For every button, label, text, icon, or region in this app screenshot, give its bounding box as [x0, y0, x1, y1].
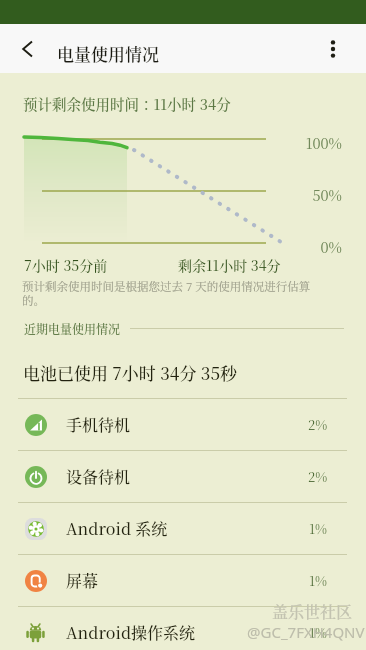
staticText: 手机待机 — [66, 413, 131, 436]
staticText: 预计剩余使用时间：11小时 34分 — [23, 93, 231, 114]
staticText: 1% — [309, 623, 328, 642]
staticText: 100% — [282, 132, 342, 153]
staticText: 屏幕 — [66, 569, 99, 592]
staticText: 近期电量使用情况 — [24, 320, 121, 337]
button[interactable]: 设备待机 — [0, 451, 366, 502]
staticText: 2% — [308, 467, 328, 486]
staticText: 0% — [282, 236, 342, 257]
button[interactable]: Android 系统 — [0, 503, 366, 554]
staticText: 设备待机 — [66, 465, 131, 488]
staticText: @GC_7FXH4QNV — [247, 622, 365, 642]
staticText: 2% — [308, 415, 328, 434]
staticText: 电量使用情况 — [57, 41, 159, 65]
button[interactable]: 手机待机 — [0, 399, 366, 450]
staticText: 1% — [309, 571, 328, 590]
staticText: Android操作系统 — [66, 621, 196, 644]
button[interactable]: More options — [309, 25, 357, 73]
staticText: 预计剩余使用时间是根据您过去 7 天的使用情况进行估算的。 — [22, 278, 321, 308]
staticText: 7小时 35分前 — [24, 255, 108, 275]
button[interactable]: Android操作系统 — [0, 607, 366, 650]
staticText: 电池已使用 7小时 34分 35秒 — [23, 360, 238, 384]
staticText: 1% — [309, 519, 328, 538]
staticText: 50% — [282, 184, 342, 205]
staticText: Android 系统 — [66, 517, 168, 540]
button[interactable]: 屏幕 — [0, 555, 366, 606]
button[interactable]: Back — [4, 25, 52, 73]
staticText: 盖乐世社区 — [272, 600, 353, 623]
staticText: 剩余11小时 34分 — [178, 255, 281, 275]
